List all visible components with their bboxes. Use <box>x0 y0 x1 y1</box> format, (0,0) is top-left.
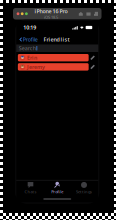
staticText: Search <box>19 45 36 52</box>
button[interactable]: Chats <box>18 181 43 194</box>
button[interactable]: Screenshot <box>86 11 91 16</box>
button[interactable]: Profile <box>16 34 38 45</box>
button[interactable]: Profile <box>45 181 70 194</box>
staticText: iPhone 16 Pro <box>34 8 67 15</box>
staticText: Chats <box>24 189 36 194</box>
staticText: 10:19 <box>23 24 36 31</box>
button[interactable]: Rotate <box>93 11 98 16</box>
staticText: Profile <box>23 36 38 43</box>
staticText: Erin <box>27 54 37 61</box>
button[interactable]: Edit Erin <box>89 54 97 61</box>
staticText: Friend list <box>43 36 69 43</box>
button[interactable]: Jeremy <box>18 63 89 71</box>
button[interactable]: Home <box>78 11 83 16</box>
staticText: Settings <box>76 189 92 194</box>
button[interactable]: Edit Jeremy <box>89 63 97 71</box>
button[interactable]: Erin <box>18 54 89 61</box>
staticText: Profile <box>51 189 63 194</box>
button[interactable]: Settings <box>71 181 96 194</box>
button[interactable]: Search <box>16 44 98 52</box>
staticText: Jeremy <box>27 63 45 70</box>
staticText: iOS 18.5 <box>44 15 58 20</box>
